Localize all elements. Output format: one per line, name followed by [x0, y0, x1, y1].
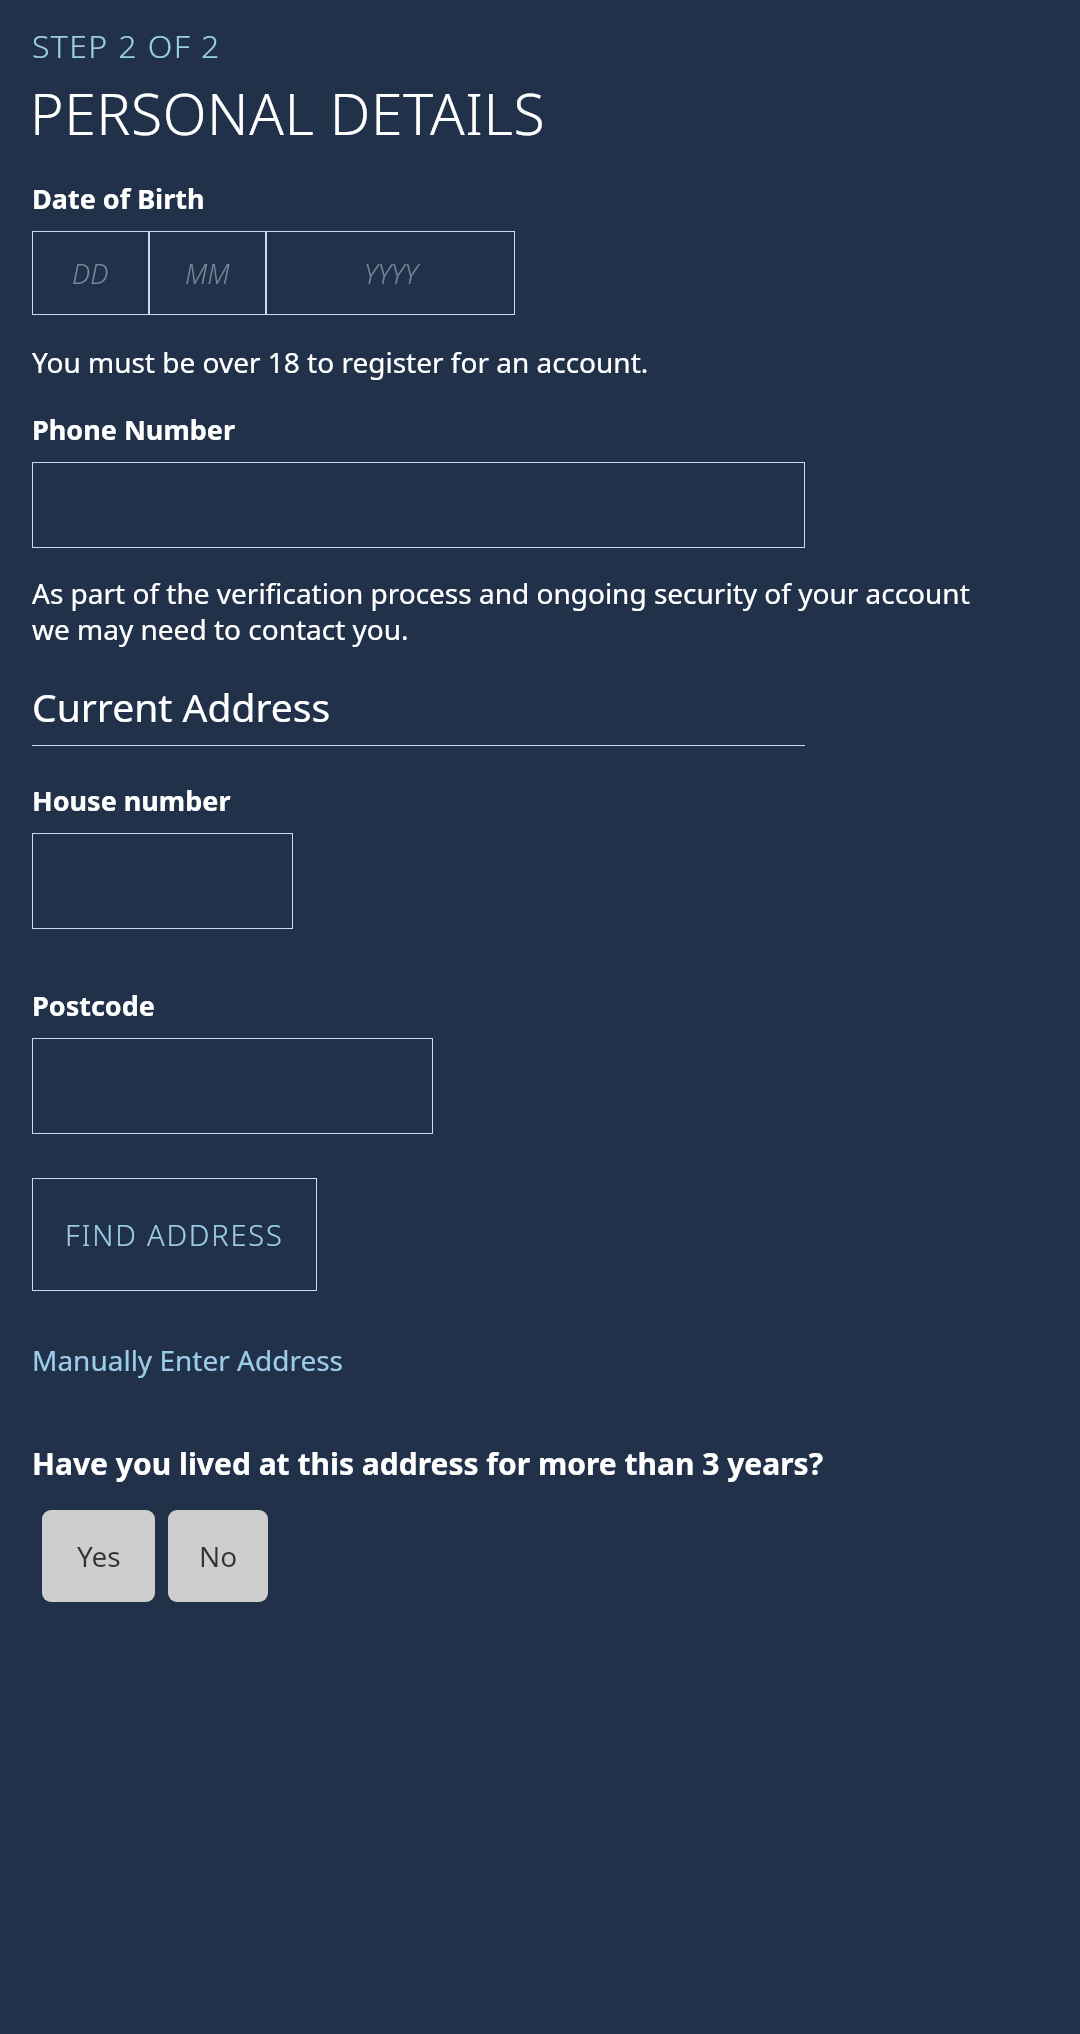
- button[interactable]: No: [168, 1510, 268, 1602]
- button[interactable]: House number: [32, 833, 293, 929]
- staticText: Current Address: [32, 680, 331, 733]
- staticText: You must be over 18 to register for an a…: [32, 343, 649, 381]
- staticText: YYYY: [364, 255, 418, 292]
- staticText: FIND ADDRESS: [65, 1215, 284, 1254]
- button[interactable]: Day: [32, 231, 149, 315]
- staticText: House number: [32, 782, 231, 819]
- staticText: Date of Birth: [32, 180, 205, 217]
- button[interactable]: Year: [266, 231, 515, 315]
- staticText: STEP 2 OF 2: [32, 24, 221, 68]
- staticText: No: [199, 1537, 238, 1575]
- staticText: Postcode: [32, 987, 155, 1024]
- staticText: Yes: [77, 1537, 121, 1575]
- staticText: Phone Number: [32, 411, 235, 448]
- button[interactable]: Postcode: [32, 1038, 433, 1134]
- button[interactable]: Manually Enter Address: [32, 1341, 343, 1379]
- button[interactable]: FIND ADDRESS: [32, 1178, 317, 1291]
- staticText: DD: [72, 255, 109, 292]
- staticText: MM: [185, 255, 230, 292]
- staticText: Have you lived at this address for more …: [32, 1443, 823, 1484]
- staticText: Manually Enter Address: [32, 1341, 343, 1379]
- button[interactable]: Phone number: [32, 462, 805, 548]
- button[interactable]: Yes: [42, 1510, 155, 1602]
- button[interactable]: Month: [149, 231, 266, 315]
- staticText: As part of the verification process and …: [32, 574, 1002, 648]
- staticText: PERSONAL DETAILS: [30, 74, 546, 152]
